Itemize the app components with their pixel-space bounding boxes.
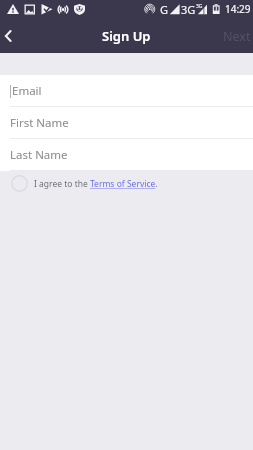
staticText: 3G bbox=[196, 3, 203, 10]
button[interactable]: Back bbox=[0, 22, 28, 50]
staticText: G bbox=[160, 2, 169, 17]
staticText: Email bbox=[12, 83, 42, 99]
button[interactable]: I agree to the Terms of Service. bbox=[0, 171, 253, 196]
staticText: Next bbox=[223, 28, 251, 45]
staticText: Sign Up bbox=[102, 27, 151, 45]
button[interactable]: Email bbox=[0, 75, 253, 107]
staticText: 3G bbox=[181, 2, 196, 17]
button[interactable]: Last Name bbox=[0, 139, 253, 171]
staticText: Last Name bbox=[10, 147, 68, 163]
button[interactable]: Next bbox=[211, 22, 253, 51]
staticText: I agree to the Terms of Service. bbox=[34, 178, 158, 190]
button[interactable]: First Name bbox=[0, 107, 253, 139]
staticText: 14:29 bbox=[225, 2, 251, 16]
staticText: First Name bbox=[10, 115, 69, 131]
